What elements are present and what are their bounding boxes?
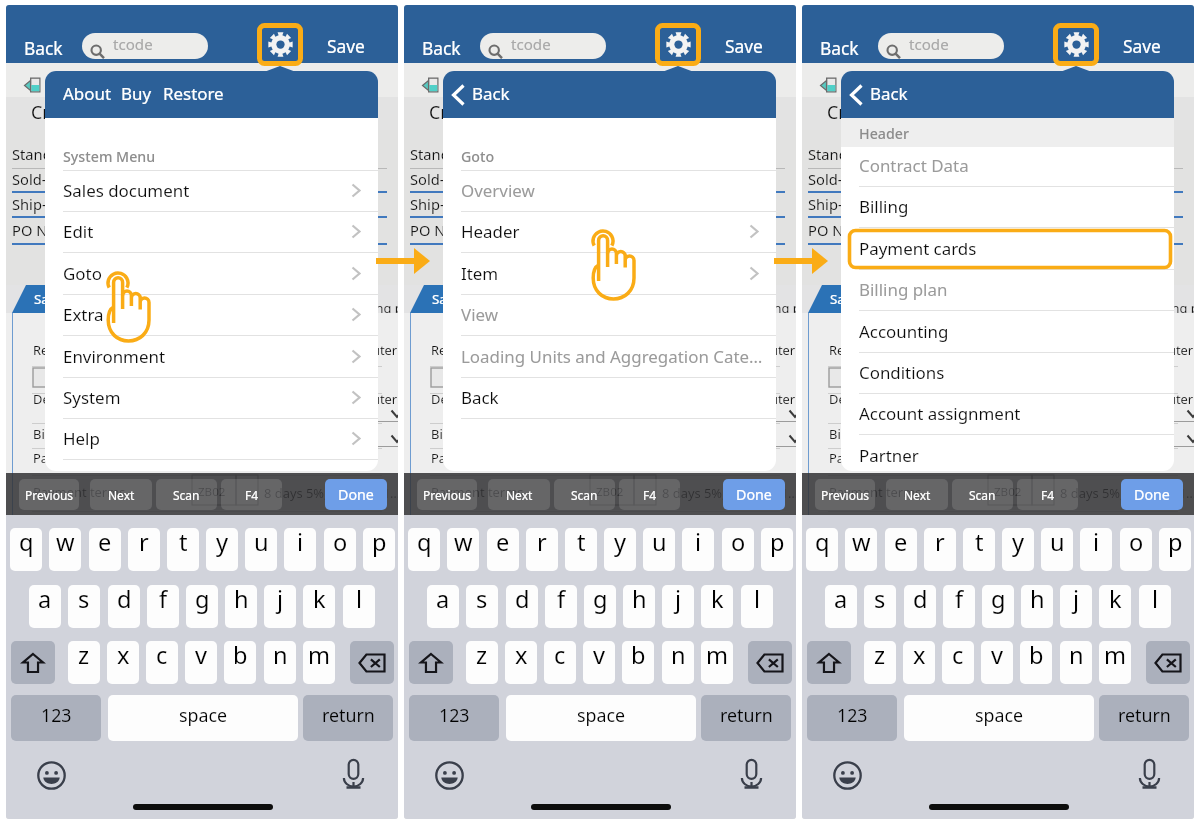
button[interactable]: u [1041,528,1073,571]
button[interactable]: Save [1122,34,1162,58]
button[interactable]: p [761,528,793,571]
button[interactable]: Backspace [748,641,792,684]
button[interactable]: return [701,695,791,741]
button[interactable]: k [1099,585,1131,628]
button[interactable]: x [107,641,139,684]
button[interactable]: i [682,528,714,571]
button[interactable]: Payment cards [841,229,1174,270]
button[interactable]: k [303,585,335,628]
button[interactable]: Partner [841,436,1174,471]
button[interactable]: l [343,585,375,628]
button[interactable]: 123 [11,695,101,741]
button[interactable]: d [506,585,538,628]
button[interactable]: a [825,585,857,628]
button[interactable]: Settings [257,23,303,66]
button[interactable]: Save [724,34,764,58]
button[interactable]: s [68,585,100,628]
button[interactable]: g [584,585,616,628]
button[interactable]: View [443,295,776,336]
button[interactable]: Shift [409,641,453,684]
button[interactable]: Restore [163,82,224,105]
button[interactable]: Scan [156,479,217,510]
button[interactable]: j [264,585,296,628]
button[interactable]: y [604,528,636,571]
button[interactable]: Scan [554,479,615,510]
button[interactable]: f [943,585,975,628]
button[interactable]: i [1080,528,1112,571]
button[interactable]: k [701,585,733,628]
button[interactable]: F4 [221,479,282,510]
button[interactable]: u [643,528,675,571]
button[interactable]: F4 [1017,479,1078,510]
button[interactable]: v [583,641,615,684]
button[interactable]: Dictation [1139,759,1160,789]
button[interactable]: Edit [45,212,378,253]
button[interactable]: l [1139,585,1171,628]
button[interactable]: s [466,585,498,628]
button[interactable]: a [29,585,61,628]
button[interactable]: e [885,528,917,571]
button[interactable]: Header [443,212,776,253]
button[interactable]: b [1020,641,1052,684]
button[interactable]: f [545,585,577,628]
button[interactable]: g [186,585,218,628]
button[interactable]: tcode [82,33,208,59]
button[interactable]: x [903,641,935,684]
button[interactable]: Shift [807,641,851,684]
button[interactable]: Help [45,419,378,460]
button[interactable]: w [845,528,877,571]
button[interactable]: Next [488,479,550,510]
button[interactable]: Emoji keyboard [833,761,862,790]
button[interactable]: Settings [655,23,701,66]
button[interactable]: Done [325,479,387,510]
button[interactable]: i [284,528,316,571]
button[interactable]: tcode [480,33,606,59]
button[interactable]: j [662,585,694,628]
button[interactable]: space [904,695,1094,741]
button[interactable]: r [924,528,956,571]
button[interactable]: z [864,641,896,684]
button[interactable]: z [68,641,100,684]
button[interactable]: space [108,695,298,741]
button[interactable]: l [741,585,773,628]
button[interactable]: Back [841,71,1174,118]
button[interactable]: j [1060,585,1092,628]
button[interactable]: a [427,585,459,628]
button[interactable]: Billing [841,187,1174,228]
button[interactable]: Emoji keyboard [37,761,66,790]
button[interactable]: p [363,528,395,571]
button[interactable]: c [544,641,576,684]
button[interactable]: t [963,528,995,571]
button[interactable]: u [245,528,277,571]
button[interactable]: Goto [45,254,378,295]
button[interactable]: o [722,528,754,571]
button[interactable]: g [982,585,1014,628]
button[interactable]: F4 [619,479,680,510]
button[interactable]: n [1060,641,1092,684]
button[interactable]: Done [1121,479,1183,510]
button[interactable]: d [108,585,140,628]
button[interactable]: o [1120,528,1152,571]
button[interactable]: Settings [1053,23,1099,66]
button[interactable]: return [1099,695,1189,741]
button[interactable]: Back [443,378,776,419]
button[interactable]: 123 [807,695,897,741]
button[interactable]: e [89,528,121,571]
button[interactable]: Loading Units and Aggregation Cate… [443,337,776,378]
button[interactable]: Emoji keyboard [435,761,464,790]
button[interactable]: e [487,528,519,571]
button[interactable]: w [49,528,81,571]
button[interactable]: Back [819,36,860,60]
button[interactable]: w [447,528,479,571]
button[interactable]: Accounting [841,312,1174,353]
button[interactable]: Extra [45,295,378,336]
button[interactable]: x [505,641,537,684]
button[interactable]: Contract Data [841,146,1174,187]
button[interactable]: return [303,695,393,741]
button[interactable]: Previous [417,479,477,510]
button[interactable]: m [303,641,335,684]
button[interactable]: Environment [45,337,378,378]
button[interactable]: z [466,641,498,684]
button[interactable]: 123 [409,695,499,741]
button[interactable]: h [1021,585,1053,628]
